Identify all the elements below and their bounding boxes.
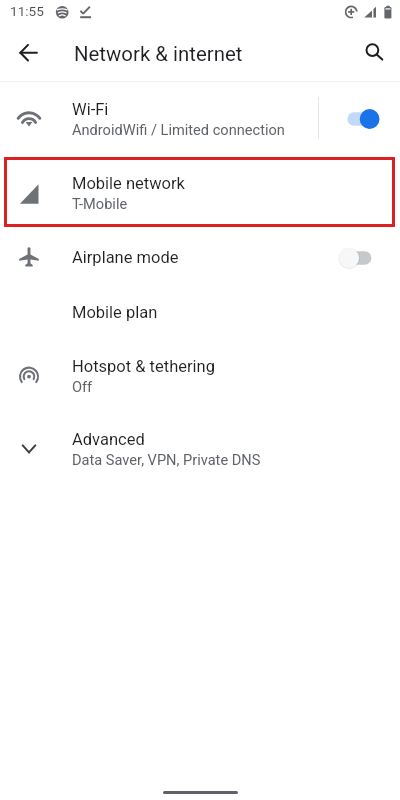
staticText: Airplane mode [72,248,179,267]
button[interactable]: Advanced [0,413,400,485]
button[interactable]: Navigate up [8,33,48,73]
staticText: 11:55 [10,3,44,19]
button[interactable]: Mobile plan [0,285,400,340]
staticText: T-Mobile [72,195,128,212]
staticText: AndroidWifi / Limited connection [72,121,285,138]
button[interactable]: Airplane mode [0,230,400,285]
staticText: Network & internet [74,42,243,66]
staticText: Off [72,378,93,395]
button[interactable]: Hotspot & tethering [0,338,400,413]
button[interactable]: Wi-Fi switch [336,97,400,141]
staticText: Hotspot & tethering [72,357,215,376]
button[interactable]: Airplane mode switch [336,236,400,280]
staticText: Mobile plan [72,303,158,322]
staticText: Data Saver, VPN, Private DNS [72,451,261,468]
button[interactable]: Search [354,33,394,73]
button[interactable]: Mobile network [0,158,400,227]
staticText: Mobile network [72,174,185,193]
button[interactable]: Wi-Fi [0,81,400,156]
staticText: Advanced [72,430,145,449]
staticText: Wi-Fi [72,100,109,119]
